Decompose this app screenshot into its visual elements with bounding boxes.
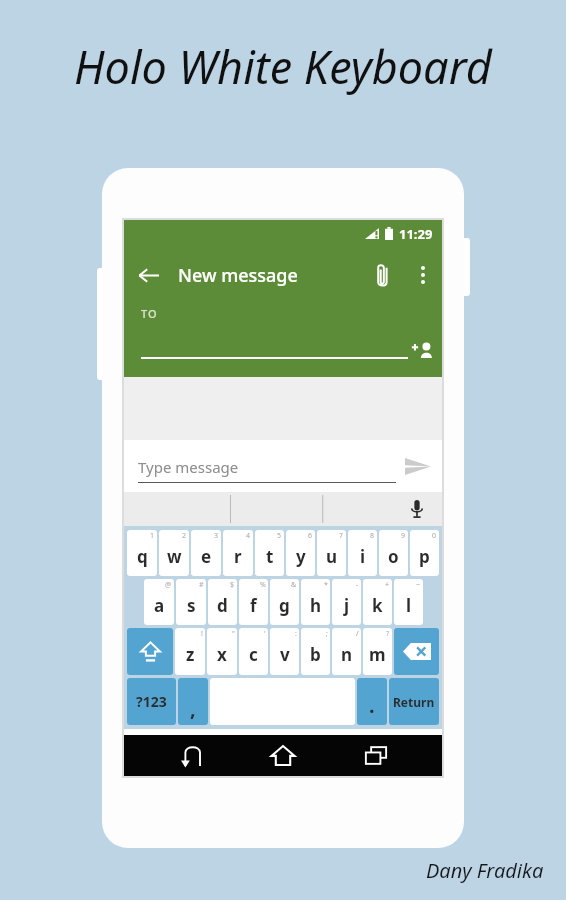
staticText: k <box>372 594 383 617</box>
staticText: f <box>250 594 257 617</box>
button[interactable]: 6 <box>286 530 315 576</box>
staticText: r <box>234 545 242 568</box>
button[interactable]: % <box>239 579 268 625</box>
button[interactable]: $ <box>208 579 237 625</box>
staticText: p <box>419 545 430 568</box>
staticText: d <box>217 594 228 617</box>
button[interactable]: ' <box>239 628 268 675</box>
button[interactable]: : <box>270 628 299 675</box>
button[interactable]: 8 <box>348 530 377 576</box>
staticText: y <box>296 545 306 568</box>
button[interactable]: ; <box>301 628 330 675</box>
staticText: 7 <box>339 531 344 541</box>
button[interactable]: 1 <box>127 530 157 576</box>
staticText: z <box>186 643 195 666</box>
staticText: m <box>369 643 386 666</box>
staticText: # <box>199 580 204 590</box>
button[interactable]: Add recipient <box>405 333 439 367</box>
staticText: ; <box>326 629 328 639</box>
button[interactable]: @ <box>144 579 174 625</box>
staticText: 5 <box>277 531 282 541</box>
staticText: & <box>291 580 297 590</box>
staticText: ' <box>264 629 266 639</box>
button[interactable]: 7 <box>317 530 346 576</box>
staticText: ~ <box>416 580 421 590</box>
staticText: 11:29 <box>399 225 433 243</box>
button[interactable]: # <box>176 579 206 625</box>
staticText: n <box>341 643 353 666</box>
staticText: u <box>326 545 338 568</box>
staticText: + <box>385 580 390 590</box>
button[interactable]: 9 <box>379 530 408 576</box>
button[interactable]: - <box>332 579 361 625</box>
staticText: . <box>369 692 375 719</box>
staticText: g <box>279 594 290 617</box>
button[interactable]: Back <box>124 251 172 299</box>
button[interactable]: 3 <box>191 530 221 576</box>
button[interactable]: 5 <box>255 530 284 576</box>
staticText: ! <box>201 629 203 639</box>
staticText: 2 <box>182 531 187 541</box>
staticText: TO <box>141 306 158 321</box>
staticText: j <box>344 594 350 617</box>
staticText: " <box>232 629 235 639</box>
staticText: l <box>406 594 412 617</box>
staticText: $ <box>230 580 235 590</box>
staticText: i <box>360 545 366 568</box>
staticText: v <box>280 643 290 666</box>
staticText: w <box>167 545 182 568</box>
button[interactable]: Attach file <box>362 254 404 296</box>
staticText: , <box>190 695 196 722</box>
button[interactable]: & <box>270 579 299 625</box>
button[interactable]: Backspace <box>394 628 439 675</box>
button[interactable]: Home <box>257 735 309 776</box>
button[interactable]: Back <box>165 735 217 776</box>
staticText: ?123 <box>136 692 167 711</box>
staticText: : <box>295 629 297 639</box>
staticText: / <box>356 629 359 639</box>
staticText: Type message <box>138 457 239 477</box>
staticText: 1 <box>150 531 155 541</box>
staticText: 3 <box>214 531 219 541</box>
button[interactable]: ! <box>175 628 205 675</box>
staticText: s <box>187 594 196 617</box>
staticText: c <box>249 643 258 666</box>
staticText: h <box>310 594 322 617</box>
staticText: - <box>356 580 359 590</box>
button[interactable]: Send <box>398 448 438 484</box>
button[interactable]: * <box>301 579 330 625</box>
staticText: New message <box>178 263 298 288</box>
staticText: o <box>388 545 399 568</box>
button[interactable]: ~ <box>394 579 423 625</box>
staticText: @ <box>165 580 172 590</box>
button[interactable]: " <box>207 628 237 675</box>
button[interactable]: + <box>363 579 392 625</box>
staticText: e <box>201 545 212 568</box>
button[interactable]: Symbols <box>127 678 176 725</box>
button[interactable]: / <box>332 628 361 675</box>
button[interactable]: Period <box>357 678 387 725</box>
button[interactable]: Return <box>389 678 439 725</box>
staticText: % <box>260 580 266 590</box>
staticText: 0 <box>432 531 437 541</box>
button[interactable]: 2 <box>159 530 189 576</box>
staticText: * <box>324 580 328 590</box>
staticText: Holo White Keyboard <box>74 36 492 97</box>
staticText: 8 <box>370 531 375 541</box>
button[interactable]: More options <box>404 256 442 294</box>
button[interactable]: Comma <box>178 678 208 725</box>
button[interactable]: Shift <box>127 628 173 675</box>
button[interactable]: ? <box>363 628 392 675</box>
staticText: 6 <box>308 531 313 541</box>
button[interactable]: 4 <box>223 530 253 576</box>
staticText: t <box>266 545 274 568</box>
staticText: b <box>310 643 321 666</box>
staticText: Dany Fradika <box>426 857 544 884</box>
staticText: ? <box>386 629 390 639</box>
button[interactable]: Voice input <box>404 496 430 522</box>
button[interactable]: 0 <box>410 530 439 576</box>
staticText: a <box>154 594 165 617</box>
button[interactable]: Recent apps <box>350 735 402 776</box>
staticText: q <box>137 545 148 568</box>
